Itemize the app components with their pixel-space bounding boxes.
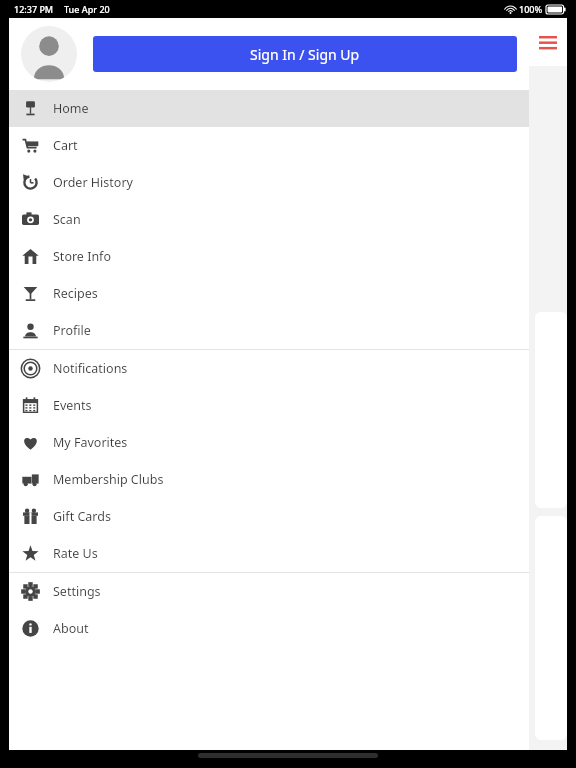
button[interactable]: Membership Clubs	[9, 461, 529, 498]
button[interactable]: Gift Cards	[9, 498, 529, 535]
staticText: Order History	[53, 174, 133, 191]
staticText: Tue Apr 20	[64, 3, 110, 15]
button[interactable]: Scan	[9, 201, 529, 238]
staticText: Settings	[53, 583, 101, 600]
staticText: Profile	[53, 322, 91, 339]
button[interactable]: Rate Us	[9, 535, 529, 572]
button[interactable]: Recipes	[9, 275, 529, 312]
button[interactable]: Profile	[9, 312, 529, 349]
button[interactable]: Menu	[529, 18, 567, 66]
button[interactable]: About	[9, 610, 529, 647]
staticText: Recipes	[53, 285, 98, 302]
button[interactable]: Events	[9, 387, 529, 424]
staticText: Sign In / Sign Up	[250, 45, 360, 64]
staticText: 100%	[519, 3, 543, 15]
button[interactable]: Order History	[9, 164, 529, 201]
button[interactable]: Settings	[9, 573, 529, 610]
staticText: Notifications	[53, 360, 128, 377]
staticText: Rate Us	[53, 545, 98, 562]
button[interactable]: Home	[9, 90, 529, 127]
button[interactable]: My Favorites	[9, 424, 529, 461]
button[interactable]: Profile avatar	[21, 26, 77, 82]
staticText: Scan	[53, 211, 81, 228]
staticText: Home	[53, 100, 89, 117]
button[interactable]: Store Info	[9, 238, 529, 275]
staticText: Cart	[53, 137, 78, 154]
staticText: Membership Clubs	[53, 471, 164, 488]
staticText: 12:37 PM	[14, 3, 54, 15]
button[interactable]: Cart	[9, 127, 529, 164]
button[interactable]: Notifications	[9, 350, 529, 387]
button[interactable]: Sign In / Sign Up	[93, 36, 517, 72]
staticText: Gift Cards	[53, 508, 111, 525]
staticText: My Favorites	[53, 434, 128, 451]
staticText: Events	[53, 397, 92, 414]
staticText: About	[53, 620, 89, 637]
staticText: Store Info	[53, 248, 111, 265]
